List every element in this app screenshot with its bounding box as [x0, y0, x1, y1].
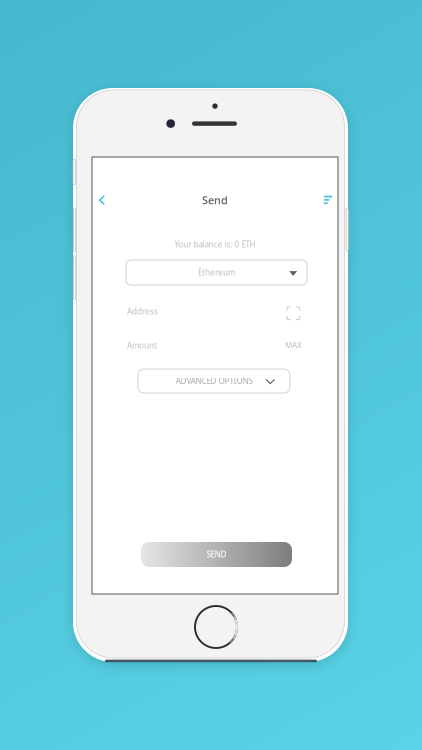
staticText: SEND [206, 549, 226, 560]
staticText: MAX [285, 340, 302, 351]
button[interactable]: MAX [280, 335, 307, 356]
button[interactable]: Options [313, 185, 343, 215]
button[interactable]: Scan QR code [281, 301, 306, 326]
button[interactable]: Ethereum [126, 260, 307, 285]
button[interactable]: ADVANCED OPTIONS [138, 369, 290, 393]
staticText: ADVANCED OPTIONS [175, 376, 252, 386]
staticText: Send [202, 193, 228, 207]
staticText: Address [127, 306, 158, 317]
staticText: Your balance is: 0 ETH [174, 239, 255, 250]
button[interactable]: SEND [141, 542, 292, 567]
staticText: Amount [127, 340, 157, 351]
button[interactable]: Home [190, 601, 242, 653]
staticText: Ethereum [198, 267, 235, 278]
button[interactable]: Back [89, 185, 115, 215]
